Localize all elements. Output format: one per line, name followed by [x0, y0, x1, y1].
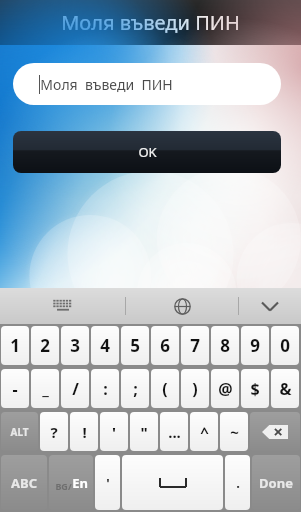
button[interactable]: ALT	[1, 412, 38, 451]
staticText: 0	[280, 334, 290, 357]
button[interactable]: 7	[181, 326, 209, 365]
staticText: OK	[138, 143, 157, 161]
button[interactable]: 5	[121, 326, 149, 365]
staticText: .	[236, 474, 240, 492]
staticText: Моля въведи ПИН	[61, 9, 240, 36]
button[interactable]: 1	[1, 326, 29, 365]
button[interactable]: (	[151, 369, 179, 408]
staticText: '	[106, 474, 110, 492]
staticText: 7	[190, 334, 200, 357]
button[interactable]: &	[271, 369, 299, 408]
staticText: !	[82, 422, 87, 442]
staticText: -	[12, 378, 18, 400]
staticText: Моля въведи ПИН	[40, 75, 173, 94]
staticText: 9	[250, 334, 260, 357]
staticText: :	[103, 378, 108, 400]
button[interactable]: Keyboard layout	[0, 288, 125, 324]
staticText: ?	[50, 422, 58, 442]
staticText: _	[42, 378, 49, 400]
staticText: En	[72, 474, 88, 492]
button[interactable]: ?	[40, 412, 68, 451]
staticText: Done	[259, 474, 293, 492]
button[interactable]: Hide keyboard	[239, 288, 301, 324]
button[interactable]: Моля въведи ПИН	[13, 63, 281, 105]
button[interactable]: !	[70, 412, 98, 451]
staticText: ^	[200, 422, 209, 442]
staticText: &	[279, 378, 292, 400]
button[interactable]: 3	[61, 326, 89, 365]
staticText: (	[162, 378, 168, 400]
staticText: @	[218, 378, 233, 400]
staticText: 5	[130, 334, 140, 357]
staticText: ;	[133, 378, 138, 400]
button[interactable]: OK	[13, 131, 281, 173]
button[interactable]: 6	[151, 326, 179, 365]
button[interactable]: Backspace	[250, 412, 300, 451]
button[interactable]: 9	[241, 326, 269, 365]
staticText: BG/	[55, 480, 72, 492]
staticText: 1	[10, 334, 20, 357]
staticText: /	[72, 378, 79, 400]
button[interactable]: Change language	[126, 288, 238, 324]
staticText: '	[112, 422, 116, 442]
button[interactable]: '	[100, 412, 128, 451]
button[interactable]: Space	[122, 455, 223, 510]
button[interactable]: Done	[252, 455, 300, 510]
button[interactable]: _	[31, 369, 59, 408]
button[interactable]: 2	[31, 326, 59, 365]
staticText: "	[140, 422, 148, 442]
button[interactable]: ^	[190, 412, 218, 451]
button[interactable]: )	[181, 369, 209, 408]
staticText: 8	[220, 334, 230, 357]
button[interactable]: /	[61, 369, 89, 408]
button[interactable]: "	[130, 412, 158, 451]
button[interactable]: 4	[91, 326, 119, 365]
button[interactable]: ;	[121, 369, 149, 408]
button[interactable]: $	[241, 369, 269, 408]
button[interactable]: :	[91, 369, 119, 408]
button[interactable]: ~	[220, 412, 248, 451]
staticText: ABC	[11, 474, 37, 492]
button[interactable]: BG/	[49, 455, 93, 510]
staticText: ALT	[10, 425, 29, 439]
staticText: ...	[168, 422, 181, 442]
staticText: 6	[160, 334, 170, 357]
staticText: )	[192, 378, 198, 400]
staticText: 4	[100, 334, 110, 357]
staticText: 3	[70, 334, 80, 357]
button[interactable]: ABC	[1, 455, 47, 510]
button[interactable]: .	[225, 455, 250, 510]
button[interactable]: ...	[160, 412, 188, 451]
staticText: 2	[40, 334, 50, 357]
button[interactable]: 8	[211, 326, 239, 365]
staticText: $	[250, 378, 260, 400]
button[interactable]: '	[95, 455, 120, 510]
button[interactable]: -	[1, 369, 29, 408]
staticText: ~	[230, 422, 239, 442]
button[interactable]: 0	[271, 326, 299, 365]
button[interactable]: @	[211, 369, 239, 408]
